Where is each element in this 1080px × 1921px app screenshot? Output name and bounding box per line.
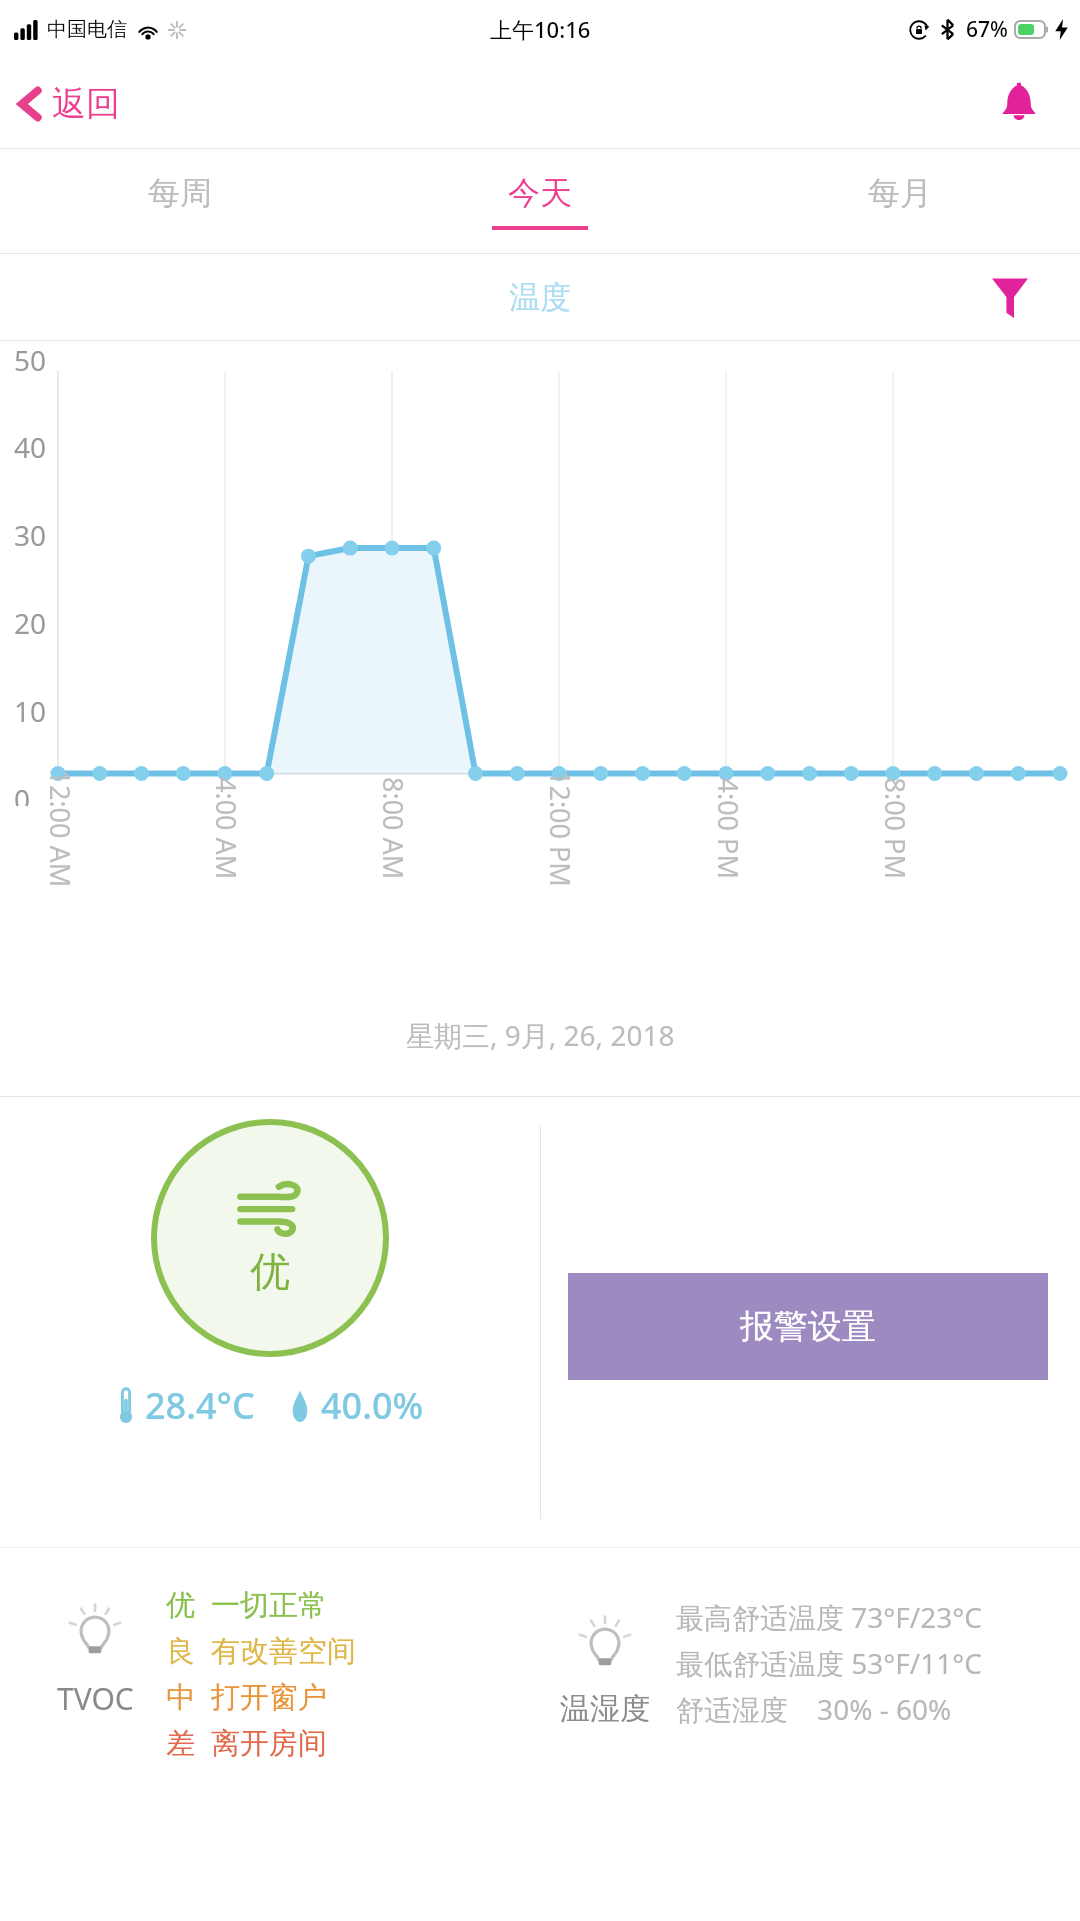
- button[interactable]: 每周: [0, 149, 360, 253]
- staticText: 打开窗户: [211, 1679, 327, 1716]
- staticText: 8:00 AM: [375, 777, 412, 880]
- staticText: 舒适湿度 30% - 60%: [676, 1690, 952, 1728]
- staticText: 0: [14, 780, 31, 806]
- button[interactable]: 每月: [720, 149, 1080, 253]
- staticText: 12:00 AM: [41, 769, 78, 887]
- staticText: 离开房间: [211, 1725, 327, 1762]
- staticText: 最低舒适温度 53°F/11°C: [676, 1644, 982, 1682]
- staticText: 一切正常: [211, 1587, 327, 1624]
- staticText: 中: [166, 1679, 195, 1716]
- staticText: 上午10:16: [490, 14, 591, 44]
- staticText: 4:00 PM: [709, 777, 746, 879]
- staticText: 10: [14, 692, 47, 730]
- staticText: 有改善空间: [211, 1633, 356, 1670]
- staticText: 67%: [966, 15, 1008, 44]
- staticText: 优: [166, 1587, 195, 1624]
- staticText: 今天: [508, 173, 572, 213]
- staticText: 40: [14, 428, 47, 466]
- staticText: 40.0%: [321, 1381, 424, 1430]
- staticText: 12:00 PM: [542, 770, 579, 887]
- staticText: 28.4°C: [145, 1381, 255, 1430]
- staticText: 差: [166, 1725, 195, 1762]
- button[interactable]: 返回: [0, 72, 140, 135]
- staticText: 返回: [52, 82, 120, 125]
- staticText: 良: [166, 1633, 195, 1670]
- staticText: 8:00 PM: [876, 777, 913, 879]
- staticText: 星期三, 9月, 26, 2018: [406, 1016, 675, 1054]
- staticText: 温度: [509, 278, 571, 317]
- staticText: 50: [14, 341, 47, 379]
- button[interactable]: Filter: [982, 269, 1038, 325]
- button[interactable]: 报警设置: [568, 1273, 1048, 1380]
- staticText: 最高舒适温度 73°F/23°C: [676, 1598, 982, 1636]
- staticText: 每周: [148, 173, 212, 213]
- staticText: 4:00 AM: [208, 777, 245, 880]
- button[interactable]: 温度: [485, 268, 595, 327]
- staticText: 20: [14, 604, 47, 642]
- staticText: 温湿度: [560, 1690, 650, 1728]
- staticText: TVOC: [57, 1678, 134, 1719]
- staticText: 优: [250, 1246, 290, 1296]
- staticText: 中国电信: [47, 17, 127, 42]
- staticText: 30: [14, 516, 47, 554]
- staticText: 每月: [868, 173, 932, 213]
- button[interactable]: Notifications: [992, 76, 1046, 130]
- button[interactable]: 今天: [360, 149, 720, 253]
- staticText: 报警设置: [740, 1305, 876, 1348]
